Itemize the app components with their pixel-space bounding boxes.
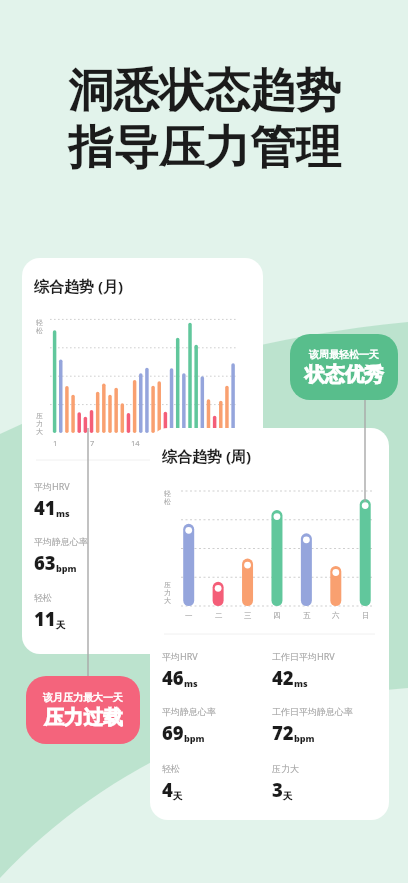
staticText: 压力过载 — [44, 705, 123, 730]
staticText: 轻松 — [34, 592, 52, 603]
staticText: 轻 松 — [164, 489, 171, 506]
staticText: 3 — [272, 777, 283, 802]
staticText: 四 — [273, 611, 281, 620]
staticText: 41 — [34, 495, 56, 520]
staticText: bpm — [56, 562, 77, 574]
staticText: 4 — [162, 777, 173, 802]
staticText: 指导压力管理 — [68, 119, 341, 176]
staticText: bpm — [184, 732, 205, 744]
staticText: 轻 松 — [36, 318, 43, 335]
staticText: 63 — [34, 550, 56, 575]
staticText: 平均静息心率 — [34, 536, 88, 547]
staticText: 轻松 — [162, 763, 180, 774]
staticText: 该月压力最大一天 — [43, 691, 123, 704]
staticText: 工作日平均HRV — [272, 650, 335, 662]
staticText: 平均HRV — [162, 650, 198, 662]
staticText: 六 — [332, 611, 340, 620]
staticText: 7 — [90, 438, 95, 448]
staticText: ms — [184, 677, 198, 689]
staticText: 天 — [283, 790, 292, 801]
staticText: 平均静息心率 — [162, 706, 216, 717]
staticText: 42 — [272, 665, 294, 690]
staticText: 状态优秀 — [305, 362, 384, 387]
staticText: 工作日平均静息心率 — [272, 706, 353, 717]
staticText: 三 — [244, 611, 252, 620]
staticText: 压 力 大 — [36, 411, 43, 436]
staticText: 11 — [34, 606, 56, 631]
staticText: 综合趋势 (月) — [34, 276, 124, 296]
button[interactable]: 该月压力最大一天 — [26, 676, 140, 744]
button[interactable]: 综合趋势 (周) — [150, 428, 389, 820]
staticText: 一 — [185, 611, 193, 620]
staticText: 69 — [162, 720, 184, 745]
staticText: 压 力 大 — [164, 580, 171, 605]
staticText: 综合趋势 (周) — [162, 446, 252, 466]
staticText: 天 — [56, 619, 65, 630]
staticText: 五 — [303, 611, 311, 620]
staticText: 二 — [215, 611, 223, 620]
staticText: 1 — [53, 438, 58, 448]
staticText: ms — [294, 677, 308, 689]
staticText: 该周最轻松一天 — [309, 348, 379, 361]
staticText: bpm — [294, 732, 315, 744]
staticText: 洞悉状态趋势 — [68, 62, 341, 119]
staticText: ms — [56, 507, 70, 519]
button[interactable]: 该周最轻松一天 — [290, 334, 398, 400]
staticText: 46 — [162, 665, 184, 690]
staticText: 压力大 — [272, 763, 299, 774]
staticText: 14 — [131, 438, 140, 448]
staticText: 72 — [272, 720, 294, 745]
button[interactable]: 综合趋势 (月) — [22, 258, 263, 654]
staticText: 平均HRV — [34, 480, 70, 492]
staticText: 天 — [173, 790, 182, 801]
staticText: 日 — [362, 611, 370, 620]
